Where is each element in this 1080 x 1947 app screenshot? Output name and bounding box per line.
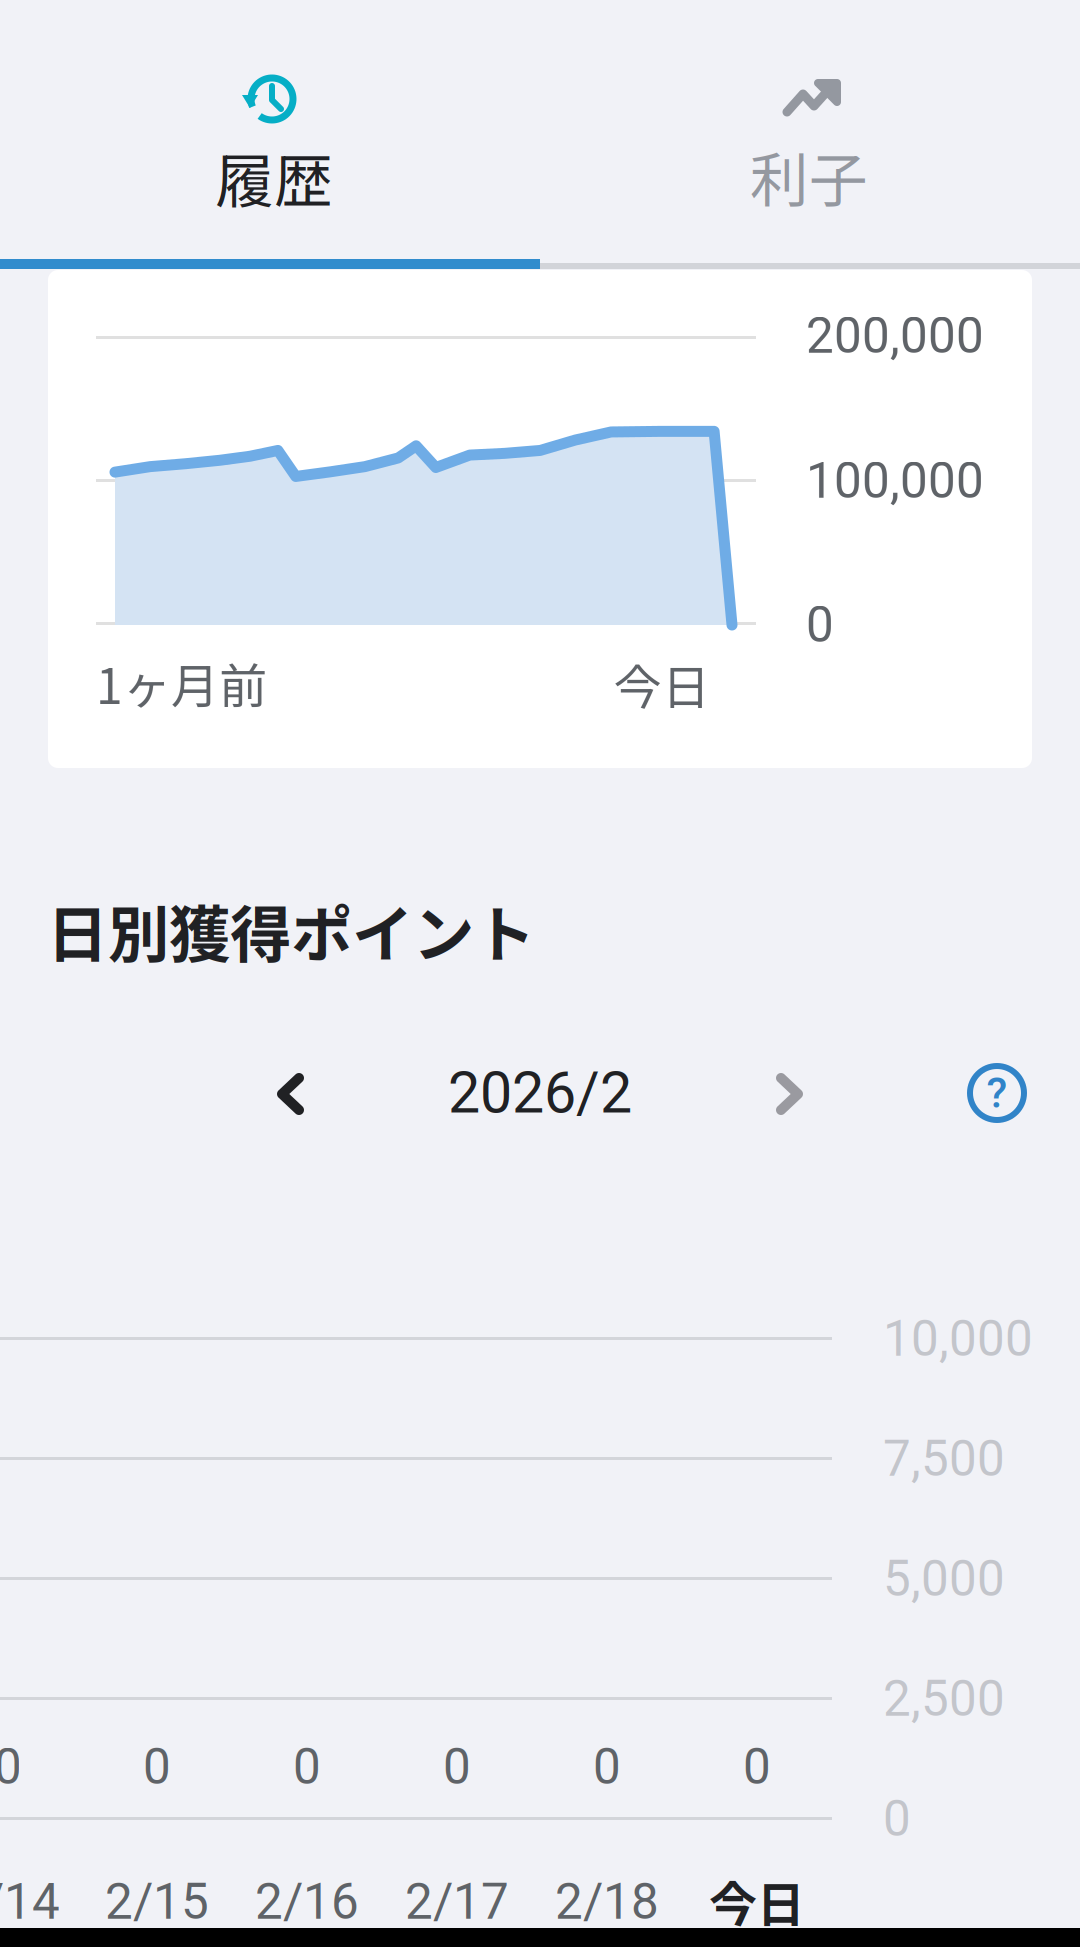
staticText: 0	[143, 1738, 171, 1796]
staticText: 0	[593, 1738, 621, 1796]
staticText: 今日	[709, 1866, 805, 1936]
staticText: 利子	[750, 133, 868, 218]
staticText: 2/16	[255, 1873, 359, 1931]
staticText: 0	[883, 1790, 911, 1848]
button[interactable]: 利子	[540, 0, 1080, 269]
staticText: 2,500	[883, 1670, 1005, 1728]
staticText: 10,000	[883, 1310, 1033, 1368]
staticText: 0	[0, 1738, 22, 1796]
staticText: 2026/2	[448, 1059, 632, 1127]
staticText: 0	[806, 596, 834, 654]
staticText: 今日	[614, 649, 710, 719]
button[interactable]: 履歴	[0, 0, 540, 269]
staticText: 200,000	[806, 307, 984, 365]
staticText: 5,000	[883, 1550, 1005, 1608]
button[interactable]: ヘルプ	[961, 1057, 1033, 1129]
staticText: 2/17	[405, 1873, 509, 1931]
staticText: 履歴	[215, 134, 333, 219]
staticText: 0	[443, 1738, 471, 1796]
staticText: 7,500	[883, 1430, 1005, 1488]
staticText: 100,000	[806, 452, 984, 510]
staticText: 0	[293, 1738, 321, 1796]
staticText: 2/18	[555, 1873, 659, 1931]
staticText: 0	[743, 1738, 771, 1796]
staticText: ?	[986, 1068, 1007, 1118]
staticText: 2/14	[0, 1873, 60, 1931]
button[interactable]: 前の月	[275, 1071, 307, 1121]
staticText: 1ヶ月前	[96, 648, 267, 718]
button[interactable]: 次の月	[773, 1071, 805, 1121]
staticText: 日別獲得ポイント	[47, 886, 535, 974]
staticText: 2/15	[105, 1873, 209, 1931]
